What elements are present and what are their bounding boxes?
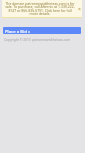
- staticText: 8147 or 866-836-6791. Click here for ful…: [2, 8, 78, 13]
- staticText: The domain patronneandtheteas.com is for: [2, 1, 78, 6]
- staticText: sale. To purchase, call Afternic at 1-33…: [2, 4, 78, 9]
- staticText: ×: [78, 6, 81, 11]
- staticText: Place a Bid »: [5, 28, 33, 34]
- button[interactable]: The domain patronneandtheteas.com is for: [2, 0, 82, 18]
- button[interactable]: Place a Bid »: [3, 27, 81, 34]
- staticText: Copyright © 2015 patronneandtheteas.com: [4, 38, 71, 42]
- staticText: more details.: [2, 11, 78, 16]
- button[interactable]: Close: [77, 6, 82, 11]
